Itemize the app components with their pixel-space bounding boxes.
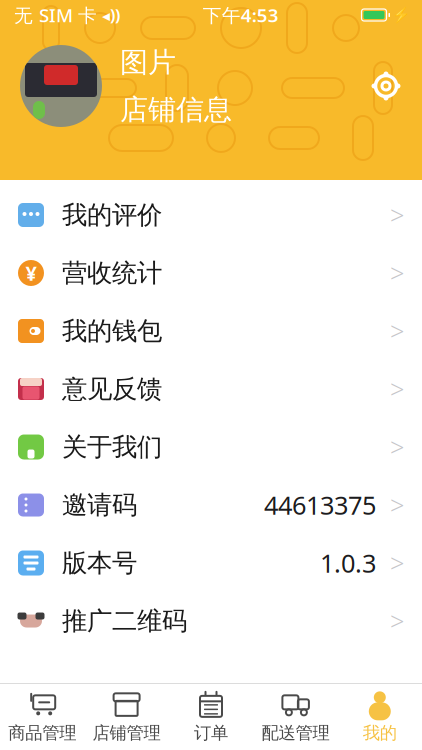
button[interactable]: 版本号 xyxy=(0,534,422,592)
button[interactable]: 我的钱包 xyxy=(0,302,422,360)
staticText: 邀请码 xyxy=(62,489,137,520)
staticText: 商品管理 xyxy=(8,722,76,744)
staticText: > xyxy=(390,372,404,406)
button[interactable]: 意见反馈 xyxy=(0,360,422,418)
button[interactable]: 配送管理 xyxy=(253,684,338,750)
button[interactable]: ¥ xyxy=(0,244,422,302)
staticText: 推广二维码 xyxy=(62,605,187,636)
staticText: > xyxy=(390,604,404,638)
staticText: ¥ xyxy=(25,260,36,286)
staticText: 订单 xyxy=(194,722,228,744)
staticText: > xyxy=(390,546,404,580)
staticText: > xyxy=(390,314,404,348)
staticText: 版本号 xyxy=(62,547,137,578)
staticText: 我的 xyxy=(363,722,397,744)
staticText: 图片 xyxy=(120,45,176,79)
staticText: > xyxy=(390,488,404,522)
staticText: 无 SIM 卡 xyxy=(14,3,97,27)
button[interactable]: Settings xyxy=(364,64,408,108)
button[interactable]: 我的 xyxy=(338,684,422,750)
staticText: 我的评价 xyxy=(62,199,162,230)
staticText: 下午4:53 xyxy=(203,3,279,27)
staticText: 营收统计 xyxy=(62,257,162,288)
button[interactable]: 我的评价 xyxy=(0,186,422,244)
staticText: 店铺信息 xyxy=(120,92,232,127)
staticText: 1.0.3 xyxy=(320,546,376,580)
button[interactable]: 商品管理 xyxy=(0,684,84,750)
staticText: 我的钱包 xyxy=(62,315,162,346)
staticText: ⚡ xyxy=(392,7,410,23)
staticText: 意见反馈 xyxy=(62,373,162,404)
button[interactable]: 店铺管理 xyxy=(84,684,169,750)
staticText: > xyxy=(390,256,404,290)
staticText: 44613375 xyxy=(264,488,376,522)
staticText: > xyxy=(390,430,404,464)
staticText: > xyxy=(390,198,404,232)
button[interactable]: 邀请码 xyxy=(0,476,422,534)
staticText: 关于我们 xyxy=(62,431,162,462)
staticText: ◂)) xyxy=(102,4,120,26)
button[interactable]: 推广二维码 xyxy=(0,592,422,650)
staticText: 配送管理 xyxy=(261,722,329,744)
button[interactable]: 关于我们 xyxy=(0,418,422,476)
staticText: 店铺管理 xyxy=(93,722,161,744)
button[interactable]: 订单 xyxy=(169,684,253,750)
